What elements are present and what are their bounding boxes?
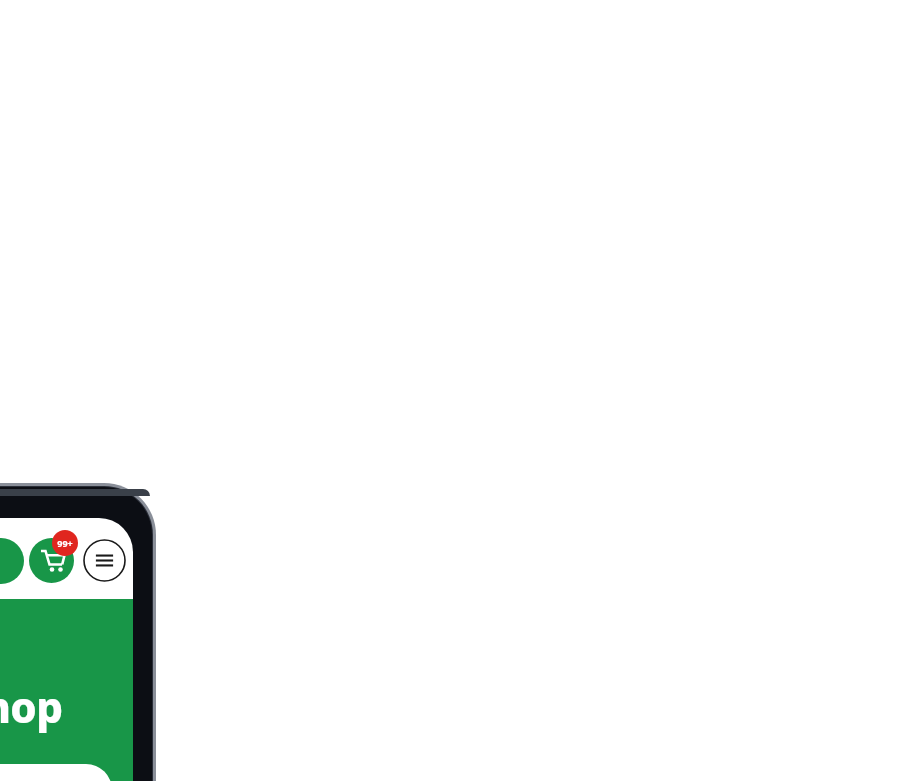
button[interactable]: Menu	[83, 539, 126, 582]
button[interactable]: Search	[0, 538, 24, 584]
staticText: 99+	[52, 537, 78, 556]
staticText: Shop	[0, 678, 63, 735]
button[interactable]: Shopping cart	[29, 538, 74, 583]
